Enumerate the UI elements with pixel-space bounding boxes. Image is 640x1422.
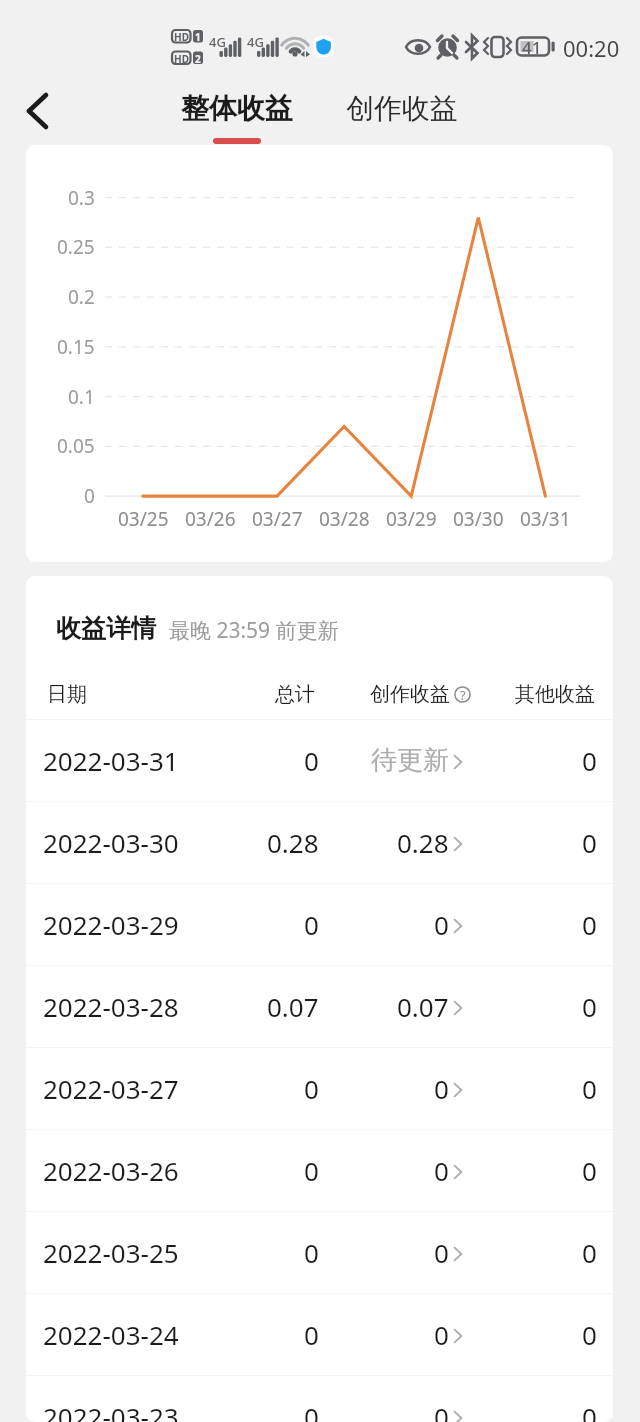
button[interactable]: 2022-03-26 <box>26 1130 613 1211</box>
staticText: 4G <box>209 33 226 51</box>
staticText: 0 <box>582 1153 597 1188</box>
staticText: 03/27 <box>252 506 303 532</box>
staticText: 0 <box>304 1235 319 1270</box>
staticText: 2022-03-30 <box>43 825 179 860</box>
staticText: 0.07 <box>267 989 319 1024</box>
button[interactable]: 创作收益 <box>337 83 467 133</box>
staticText: 0 <box>582 1317 597 1352</box>
staticText: 2022-03-26 <box>43 1153 179 1188</box>
staticText: HD <box>174 52 189 65</box>
staticText: 0.07 <box>397 989 449 1024</box>
staticText: 0.28 <box>267 825 319 860</box>
button[interactable]: 2022-03-28 <box>26 966 613 1047</box>
staticText: 03/25 <box>118 506 169 532</box>
staticText: 0 <box>582 1235 597 1270</box>
staticText: 2022-03-28 <box>43 989 179 1024</box>
staticText: 最晚 23:59 前更新 <box>169 616 339 645</box>
button[interactable]: 2022-03-29 <box>26 884 613 965</box>
button[interactable]: 关于创作收益的说明 <box>454 686 471 703</box>
staticText: 41 <box>522 36 542 59</box>
staticText: 0 <box>582 1399 597 1422</box>
staticText: 0 <box>434 1317 449 1352</box>
staticText: 0.28 <box>397 825 449 860</box>
staticText: 2022-03-27 <box>43 1071 179 1106</box>
staticText: 0 <box>434 1153 449 1188</box>
staticText: 0 <box>582 743 597 778</box>
staticText: 1 <box>195 30 201 43</box>
staticText: 2022-03-25 <box>43 1235 179 1270</box>
button[interactable]: 2022-03-25 <box>26 1212 613 1293</box>
staticText: 0.2 <box>68 284 95 310</box>
staticText: 0 <box>434 907 449 942</box>
staticText: 03/28 <box>319 506 370 532</box>
staticText: 0 <box>434 1071 449 1106</box>
staticText: 0 <box>582 1071 597 1106</box>
staticText: 0 <box>304 1071 319 1106</box>
button[interactable]: 2022-03-31 <box>26 720 613 801</box>
staticText: 0 <box>304 1153 319 1188</box>
staticText: 总计 <box>275 682 315 707</box>
staticText: 4G <box>247 33 264 51</box>
staticText: 0.15 <box>57 334 95 360</box>
button[interactable]: 整体收益 <box>172 83 302 133</box>
staticText: 2022-03-23 <box>43 1399 179 1422</box>
staticText: 2022-03-24 <box>43 1317 179 1352</box>
staticText: 其他收益 <box>515 682 595 707</box>
staticText: 0 <box>304 1317 319 1352</box>
button[interactable]: 2022-03-24 <box>26 1294 613 1375</box>
staticText: 0 <box>582 907 597 942</box>
button[interactable]: Back <box>5 87 53 135</box>
staticText: 创作收益 <box>346 91 458 126</box>
staticText: 0 <box>304 743 319 778</box>
staticText: 创作收益 <box>370 682 450 707</box>
staticText: 日期 <box>47 682 87 707</box>
staticText: 0 <box>582 989 597 1024</box>
staticText: ? <box>460 686 466 703</box>
staticText: 0 <box>84 483 95 509</box>
staticText: 0.1 <box>68 384 95 410</box>
button[interactable]: 2022-03-30 <box>26 802 613 883</box>
staticText: 0.3 <box>68 185 95 211</box>
staticText: 0.05 <box>57 433 95 459</box>
staticText: 0 <box>304 907 319 942</box>
staticText: 0 <box>582 825 597 860</box>
staticText: 2022-03-29 <box>43 907 179 942</box>
staticText: 03/30 <box>453 506 504 532</box>
staticText: HD <box>174 30 189 43</box>
button[interactable]: 2022-03-27 <box>26 1048 613 1129</box>
staticText: 整体收益 <box>181 91 293 126</box>
staticText: 0 <box>304 1399 319 1422</box>
staticText: 03/29 <box>386 506 437 532</box>
staticText: 2 <box>195 52 201 65</box>
staticText: 00:20 <box>563 33 620 63</box>
staticText: 0 <box>434 1399 449 1422</box>
staticText: 03/26 <box>185 506 236 532</box>
staticText: 03/31 <box>520 506 571 532</box>
staticText: 2022-03-31 <box>43 743 179 778</box>
button[interactable]: 2022-03-23 <box>26 1376 613 1422</box>
staticText: 待更新 <box>371 744 449 777</box>
staticText: 0 <box>434 1235 449 1270</box>
staticText: 0.25 <box>57 234 95 260</box>
staticText: 收益详情 <box>56 613 156 644</box>
